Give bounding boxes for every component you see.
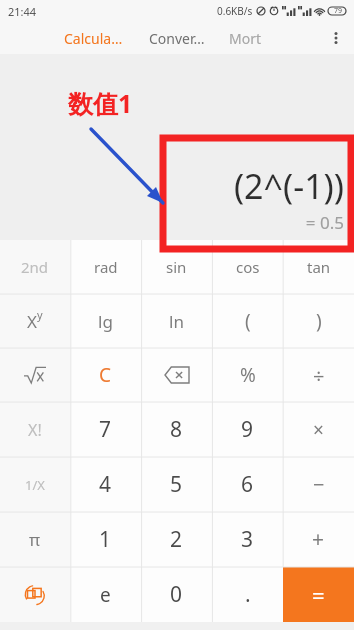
staticText: e [100, 582, 111, 608]
staticText: Mort [229, 29, 262, 48]
staticText: 6 [241, 470, 254, 499]
staticText: − [313, 471, 325, 498]
button[interactable]: Calcula… [62, 25, 125, 52]
staticText: 9 [241, 415, 254, 444]
button[interactable]: 3 [212, 512, 283, 567]
staticText: 0.6KB/s [217, 4, 253, 18]
button[interactable]: 1/X [0, 457, 70, 512]
staticText: ( [245, 308, 251, 334]
button[interactable]: Delete [141, 348, 212, 402]
staticText: + [312, 525, 325, 554]
staticText: 5 [170, 470, 183, 499]
staticText: ) [316, 308, 322, 334]
button[interactable]: ÷ [283, 348, 354, 402]
staticText: 0 [170, 580, 183, 609]
staticText: = [312, 580, 325, 610]
staticText: 7 [99, 415, 112, 444]
button[interactable]: More options [322, 24, 350, 52]
button[interactable]: = [283, 567, 354, 622]
button[interactable]: − [283, 457, 354, 512]
button[interactable]: 4 [70, 457, 141, 512]
button[interactable] [0, 348, 70, 402]
staticText: 21:44 [8, 4, 37, 19]
staticText: 数值1 [68, 86, 133, 120]
staticText: tan [307, 257, 331, 277]
staticText: (2^(-1)) [233, 163, 344, 209]
staticText: 3 [241, 525, 254, 554]
staticText: rad [94, 257, 118, 277]
button[interactable]: 0 [141, 567, 212, 622]
staticText: 1 [99, 525, 112, 554]
staticText: 8 [170, 415, 183, 444]
staticText: = 0.5 [305, 211, 344, 234]
staticText: 2nd [21, 257, 49, 277]
button[interactable]: 8 [141, 402, 212, 457]
button[interactable]: Mort [227, 25, 264, 52]
button[interactable]: ( [212, 294, 283, 348]
staticText: ÷ [313, 362, 325, 389]
staticText: 79 [334, 6, 343, 16]
button[interactable]: . [212, 567, 283, 622]
staticText: Conver… [149, 29, 205, 48]
button[interactable]: X! [0, 402, 70, 457]
button[interactable]: lg [70, 294, 141, 348]
staticText: 1/X [25, 476, 45, 494]
staticText: y [37, 307, 43, 322]
staticText: . [245, 580, 251, 609]
staticText: % [240, 362, 256, 388]
button[interactable]: + [283, 512, 354, 567]
button[interactable]: 9 [212, 402, 283, 457]
staticText: 2 [170, 525, 183, 554]
button[interactable]: 5 [141, 457, 212, 512]
button[interactable]: 6 [212, 457, 283, 512]
button[interactable]: ) [283, 294, 354, 348]
button[interactable]: rad [70, 240, 141, 294]
staticText: C [99, 362, 112, 388]
button[interactable]: e [70, 567, 141, 622]
button[interactable]: 2nd [0, 240, 70, 294]
button[interactable]: π [0, 512, 70, 567]
button[interactable]: 1 [70, 512, 141, 567]
staticText: ln [169, 310, 184, 333]
staticText: × [313, 417, 324, 443]
staticText: X [27, 310, 37, 333]
staticText: X! [28, 419, 42, 441]
staticText: cos [236, 257, 260, 277]
button[interactable]: % [212, 348, 283, 402]
staticText: Calcula… [64, 29, 123, 48]
button[interactable]: X [0, 294, 70, 348]
button[interactable]: tan [283, 240, 354, 294]
button[interactable]: 2 [141, 512, 212, 567]
staticText: lg [98, 310, 113, 333]
button[interactable]: cos [212, 240, 283, 294]
button[interactable]: × [283, 402, 354, 457]
button[interactable]: Conver… [147, 25, 207, 52]
staticText: π [29, 528, 41, 551]
staticText: 4 [99, 470, 112, 499]
button[interactable]: sin [141, 240, 212, 294]
staticText: sin [166, 257, 187, 277]
button[interactable]: 7 [70, 402, 141, 457]
button[interactable]: Switch mode [0, 567, 70, 622]
button[interactable]: ln [141, 294, 212, 348]
button[interactable]: C [70, 348, 141, 402]
